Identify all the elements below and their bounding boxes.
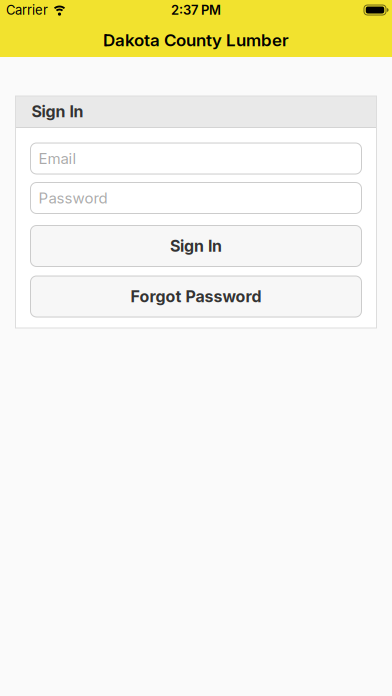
button[interactable]: Sign In [30,225,361,266]
staticText: Dakota County Lumber [103,30,289,50]
staticText: Password [38,189,107,207]
staticText: Forgot Password [130,287,261,306]
staticText: 2:37 PM [171,2,221,18]
staticText: Email [38,150,76,167]
staticText: Sign In [31,102,83,121]
staticText: Carrier [6,2,48,18]
staticText: Sign In [170,237,222,255]
button[interactable]: Forgot Password [30,276,361,317]
